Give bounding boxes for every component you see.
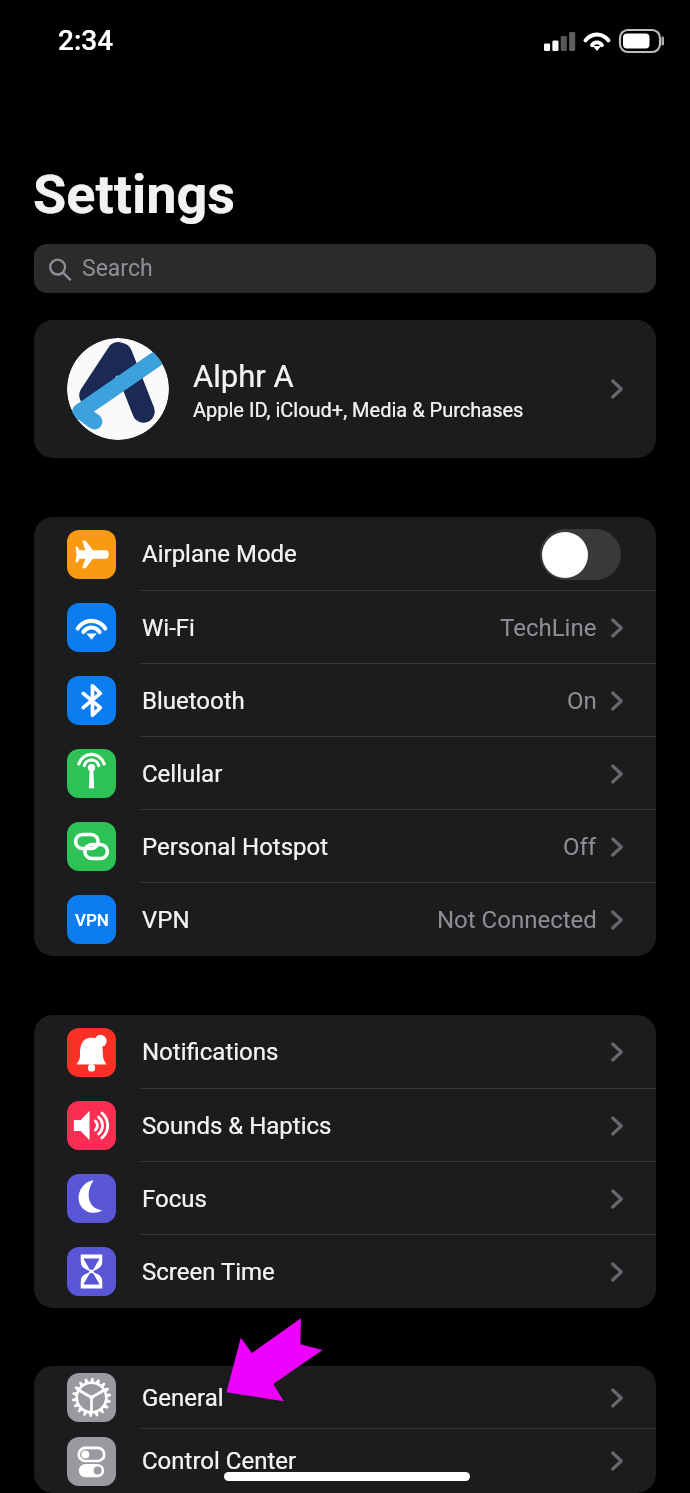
button[interactable]: Focus xyxy=(34,1162,656,1235)
staticText: On xyxy=(567,687,597,715)
other: Open xyxy=(611,1042,623,1062)
staticText: Airplane Mode xyxy=(142,540,297,568)
staticText: Not Connected xyxy=(437,906,597,934)
staticText: Sounds & Haptics xyxy=(142,1112,332,1140)
staticText: Screen Time xyxy=(142,1258,275,1286)
button[interactable]: Airplane Mode xyxy=(34,517,656,591)
button[interactable]: General xyxy=(34,1366,656,1429)
staticText: Apple ID, iCloud+, Media & Purchases xyxy=(193,398,524,421)
staticText: Notifications xyxy=(142,1038,279,1066)
button[interactable]: Bluetooth xyxy=(34,664,656,737)
other: Open xyxy=(611,691,623,711)
button[interactable]: Alphr A xyxy=(34,320,656,458)
other: Open xyxy=(611,379,623,399)
staticText: Bluetooth xyxy=(142,687,245,715)
other: Open xyxy=(611,764,623,784)
button[interactable]: Wi-Fi xyxy=(34,591,656,664)
staticText: Alphr A xyxy=(193,358,294,394)
other: Open xyxy=(611,1262,623,1282)
other: Open xyxy=(611,618,623,638)
button[interactable]: Airplane Mode toggle xyxy=(540,529,621,580)
button[interactable]: Notifications xyxy=(34,1015,656,1089)
staticText: Search xyxy=(82,255,153,282)
staticText: Personal Hotspot xyxy=(142,833,329,861)
staticText: General xyxy=(142,1384,224,1412)
other: Open xyxy=(611,1116,623,1136)
other: Open xyxy=(611,837,623,857)
staticText: Cellular xyxy=(142,760,223,788)
other: Open xyxy=(611,1189,623,1209)
button[interactable]: Personal Hotspot xyxy=(34,810,656,883)
other: Open xyxy=(611,1451,623,1471)
staticText: Settings xyxy=(33,163,236,226)
button[interactable]: VPN xyxy=(34,883,656,956)
button[interactable]: Screen Time xyxy=(34,1235,656,1308)
staticText: 2:34 xyxy=(58,24,114,57)
staticText: VPN xyxy=(75,910,109,930)
button[interactable]: Sounds & Haptics xyxy=(34,1089,656,1162)
staticText: VPN xyxy=(142,906,190,934)
staticText: Control Center xyxy=(142,1447,297,1475)
staticText: Wi-Fi xyxy=(142,614,195,642)
staticText: Off xyxy=(563,833,597,861)
button[interactable]: Search xyxy=(34,244,656,293)
staticText: Focus xyxy=(142,1185,207,1213)
button[interactable]: Control Center xyxy=(34,1429,656,1493)
button[interactable]: Cellular xyxy=(34,737,656,810)
staticText: TechLine xyxy=(500,614,597,642)
other: Open xyxy=(611,910,623,930)
other: Open xyxy=(611,1388,623,1408)
